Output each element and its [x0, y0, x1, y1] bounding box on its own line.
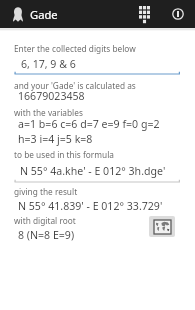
staticText: N 55° 4a.khe' - E 012° 3h.dge': [20, 164, 166, 178]
staticText: 8 (N=8 E=9): [18, 228, 75, 242]
staticText: Enter the collected digits below: [14, 43, 136, 54]
staticText: with the variables: [14, 107, 83, 118]
staticText: to be used in this formula: [14, 149, 114, 160]
button[interactable]: Info: [165, 1, 191, 27]
staticText: a=1 b=6 c=6 d=7 e=9 f=0 g=2: [18, 117, 160, 131]
button[interactable]: App icon: [12, 6, 23, 22]
staticText: Gade: [30, 7, 58, 22]
staticText: 6, 17, 9 & 6: [21, 57, 76, 71]
staticText: h=3 i=4 j=5 k=8: [18, 132, 93, 146]
button[interactable]: Dialpad: [131, 1, 157, 27]
staticText: 16679023458: [18, 89, 85, 103]
staticText: and your 'Gade' is calculated as: [14, 80, 136, 91]
button[interactable]: Show on map: [149, 216, 175, 237]
staticText: giving the result: [14, 186, 78, 197]
staticText: N 55° 41.839' - E 012° 33.729': [18, 199, 163, 213]
staticText: with digital root: [14, 215, 76, 226]
